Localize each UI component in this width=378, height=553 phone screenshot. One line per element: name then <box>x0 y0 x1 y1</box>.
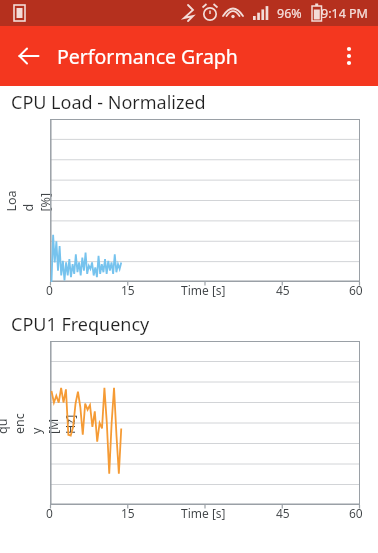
staticText: 60 <box>349 505 363 521</box>
staticText: 45 <box>276 282 290 298</box>
staticText: 45 <box>276 505 290 521</box>
staticText: Time [s] <box>181 505 226 521</box>
staticText: 60 <box>349 282 363 298</box>
staticText: Time [s] <box>181 282 226 298</box>
staticText: 15 <box>121 505 135 521</box>
staticText: 15 <box>121 282 135 298</box>
staticText: CPU1 Frequency <box>11 312 150 337</box>
button[interactable]: Back <box>7 34 51 78</box>
button[interactable]: More options <box>327 34 371 78</box>
staticText: 96% <box>277 5 302 22</box>
staticText: 0 <box>46 505 53 521</box>
staticText: CPU Load - Normalized <box>11 90 206 115</box>
staticText: CPU Load [%] <box>0 189 53 211</box>
staticText: Performance Graph <box>57 43 238 70</box>
staticText: 0 <box>46 282 53 298</box>
staticText: CPU Frequency [MHz] <box>0 412 79 434</box>
staticText: 9:14 PM <box>321 5 368 22</box>
